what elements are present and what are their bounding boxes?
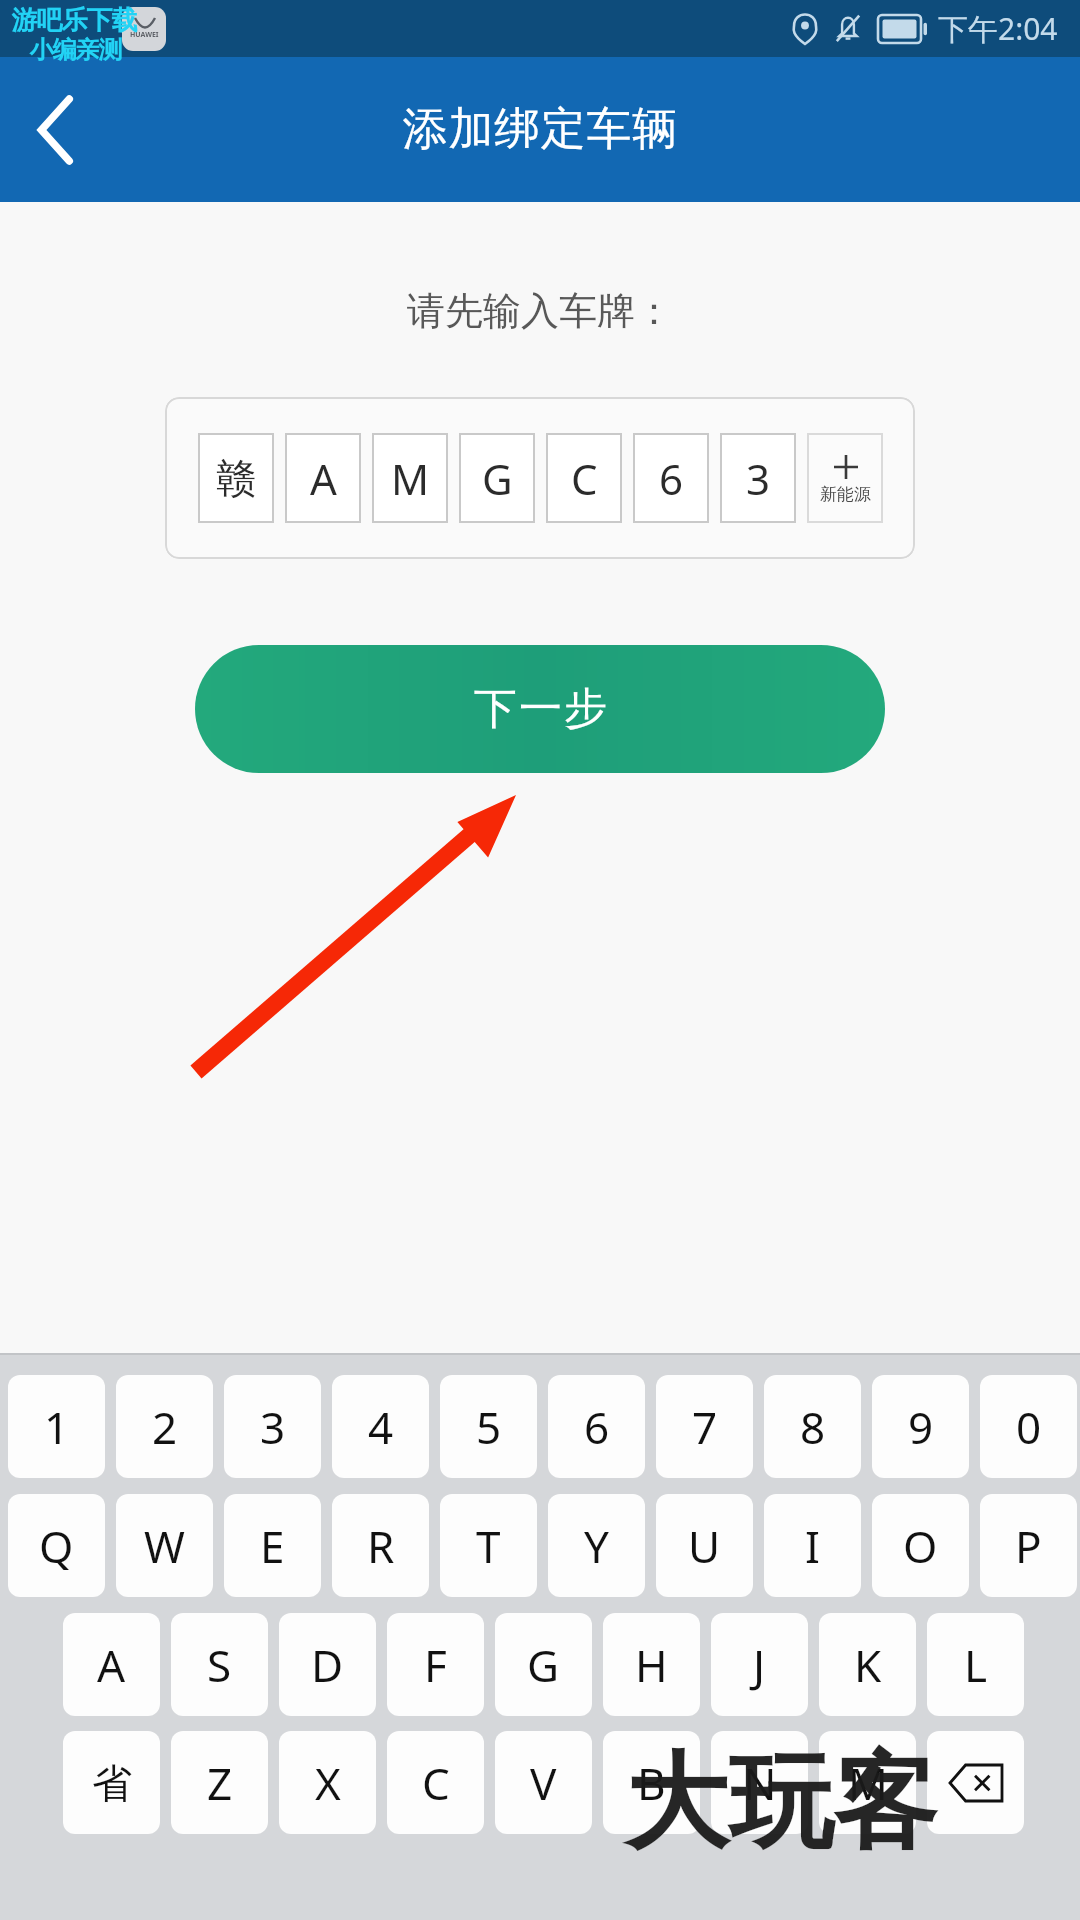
staticText: R: [367, 1516, 395, 1576]
button[interactable]: 3: [224, 1375, 321, 1478]
button[interactable]: 6: [548, 1375, 645, 1478]
staticText: G: [527, 1635, 560, 1695]
button[interactable]: J: [711, 1613, 808, 1716]
button[interactable]: Backspace: [927, 1731, 1024, 1834]
staticText: 省: [92, 1758, 132, 1808]
button[interactable]: A: [63, 1613, 160, 1716]
button[interactable]: 5: [440, 1375, 537, 1478]
staticText: 9: [908, 1397, 934, 1457]
staticText: 小编亲测: [30, 35, 122, 65]
button[interactable]: N: [711, 1731, 808, 1834]
button[interactable]: D: [279, 1613, 376, 1716]
staticText: 添加绑定车辆: [402, 101, 678, 158]
button[interactable]: 新能源: [807, 433, 883, 523]
button[interactable]: 0: [980, 1375, 1077, 1478]
button[interactable]: M: [372, 433, 448, 523]
button[interactable]: 4: [332, 1375, 429, 1478]
staticText: G: [482, 450, 513, 507]
button[interactable]: 赣: [198, 433, 274, 523]
staticText: 7: [692, 1397, 718, 1457]
staticText: A: [97, 1635, 126, 1695]
staticText: HUAWEI: [130, 30, 159, 40]
staticText: 游吧乐下载: [12, 4, 137, 37]
staticText: 0: [1016, 1397, 1042, 1457]
button[interactable]: B: [603, 1731, 700, 1834]
staticText: H: [635, 1635, 668, 1695]
button[interactable]: P: [980, 1494, 1077, 1597]
staticText: 6: [659, 450, 684, 507]
staticText: N: [743, 1753, 777, 1813]
button[interactable]: H: [603, 1613, 700, 1716]
button[interactable]: G: [495, 1613, 592, 1716]
button[interactable]: 1: [8, 1375, 105, 1478]
button[interactable]: 省: [63, 1731, 160, 1834]
staticText: Y: [584, 1516, 609, 1576]
staticText: M: [848, 1753, 888, 1813]
button[interactable]: Back: [0, 65, 110, 195]
button[interactable]: E: [224, 1494, 321, 1597]
staticText: 4: [368, 1397, 394, 1457]
staticText: 3: [260, 1397, 286, 1457]
staticText: 1: [44, 1397, 70, 1457]
staticText: X: [315, 1753, 341, 1813]
button[interactable]: 2: [116, 1375, 213, 1478]
button[interactable]: Z: [171, 1731, 268, 1834]
button[interactable]: 9: [872, 1375, 969, 1478]
staticText: 下一步: [473, 682, 608, 736]
staticText: A: [310, 450, 337, 507]
staticText: T: [476, 1516, 501, 1576]
button[interactable]: L: [927, 1613, 1024, 1716]
button[interactable]: K: [819, 1613, 916, 1716]
button[interactable]: F: [387, 1613, 484, 1716]
staticText: Q: [39, 1516, 74, 1576]
staticText: P: [1015, 1516, 1042, 1576]
staticText: O: [903, 1516, 938, 1576]
button[interactable]: W: [116, 1494, 213, 1597]
button[interactable]: S: [171, 1613, 268, 1716]
staticText: I: [805, 1516, 820, 1576]
staticText: V: [530, 1753, 557, 1813]
button[interactable]: G: [459, 433, 535, 523]
button[interactable]: 下一步: [195, 645, 885, 773]
staticText: W: [144, 1516, 185, 1576]
staticText: 新能源: [820, 484, 871, 505]
button[interactable]: V: [495, 1731, 592, 1834]
staticText: Z: [207, 1753, 233, 1813]
staticText: 下午2:04: [938, 8, 1058, 49]
staticText: 3: [746, 450, 771, 507]
staticText: 2: [152, 1397, 178, 1457]
button[interactable]: O: [872, 1494, 969, 1597]
staticText: 请先输入车牌：: [0, 287, 1080, 335]
button[interactable]: 6: [633, 433, 709, 523]
staticText: 大玩客: [625, 1738, 937, 1869]
staticText: M: [391, 450, 430, 507]
staticText: 6: [584, 1397, 610, 1457]
button[interactable]: A: [285, 433, 361, 523]
button[interactable]: C: [546, 433, 622, 523]
button[interactable]: X: [279, 1731, 376, 1834]
staticText: 8: [800, 1397, 826, 1457]
button[interactable]: I: [764, 1494, 861, 1597]
staticText: B: [637, 1753, 666, 1813]
button[interactable]: M: [819, 1731, 916, 1834]
staticText: 赣: [216, 453, 256, 503]
staticText: S: [207, 1635, 232, 1695]
button[interactable]: C: [387, 1731, 484, 1834]
button[interactable]: 8: [764, 1375, 861, 1478]
staticText: E: [260, 1516, 285, 1576]
staticText: 5: [476, 1397, 502, 1457]
button[interactable]: Q: [8, 1494, 105, 1597]
button[interactable]: 7: [656, 1375, 753, 1478]
staticText: J: [753, 1635, 766, 1695]
staticText: U: [688, 1516, 721, 1576]
staticText: C: [422, 1753, 450, 1813]
button[interactable]: T: [440, 1494, 537, 1597]
button[interactable]: R: [332, 1494, 429, 1597]
button[interactable]: Y: [548, 1494, 645, 1597]
staticText: K: [854, 1635, 882, 1695]
staticText: F: [424, 1635, 447, 1695]
button[interactable]: U: [656, 1494, 753, 1597]
staticText: C: [571, 450, 598, 507]
staticText: L: [964, 1635, 988, 1695]
button[interactable]: 3: [720, 433, 796, 523]
